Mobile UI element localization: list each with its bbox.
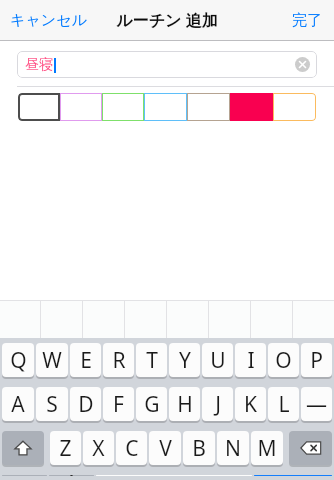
button[interactable] bbox=[41, 300, 82, 338]
button[interactable]: Colour 1 bbox=[18, 93, 60, 121]
button[interactable]: C bbox=[116, 431, 147, 469]
staticText: P bbox=[310, 346, 323, 375]
button[interactable]: V bbox=[149, 431, 181, 469]
button[interactable]: 昼寝 bbox=[17, 51, 317, 78]
button[interactable]: 完了 bbox=[254, 475, 332, 476]
button[interactable]: I bbox=[235, 343, 266, 381]
button[interactable] bbox=[167, 300, 208, 338]
button[interactable]: Colour 5 bbox=[187, 93, 230, 121]
button[interactable]: Z bbox=[50, 431, 81, 469]
staticText: K bbox=[244, 390, 257, 419]
button[interactable]: B bbox=[183, 431, 215, 469]
button[interactable]: G bbox=[136, 387, 167, 425]
button[interactable]: Colour 2 bbox=[60, 93, 102, 121]
button[interactable]: L bbox=[268, 387, 299, 425]
button[interactable]: D bbox=[70, 387, 101, 425]
button[interactable]: P bbox=[301, 343, 332, 381]
staticText: Q bbox=[10, 346, 27, 375]
button[interactable]: X bbox=[83, 431, 114, 469]
button[interactable]: R bbox=[103, 343, 134, 381]
staticText: W bbox=[42, 346, 62, 375]
staticText: L bbox=[278, 390, 290, 419]
button[interactable]: Colour 4 bbox=[144, 93, 187, 121]
staticText: H bbox=[177, 390, 193, 419]
button[interactable]: E bbox=[70, 343, 101, 381]
staticText: R bbox=[112, 346, 126, 375]
staticText: キャンセル bbox=[10, 11, 87, 30]
button[interactable]: Colour 3 bbox=[102, 93, 144, 121]
staticText: N bbox=[225, 434, 241, 463]
staticText: F bbox=[113, 390, 124, 419]
staticText: — bbox=[306, 390, 327, 419]
staticText: M bbox=[257, 434, 277, 463]
button[interactable]: A bbox=[2, 387, 34, 425]
button[interactable]: H bbox=[169, 387, 200, 425]
button[interactable]: T bbox=[136, 343, 167, 381]
staticText: I bbox=[247, 346, 255, 375]
button[interactable]: W bbox=[36, 343, 68, 381]
button[interactable] bbox=[293, 300, 334, 338]
button[interactable]: Shift bbox=[2, 431, 44, 469]
button[interactable]: J bbox=[202, 387, 233, 425]
staticText: Y bbox=[179, 346, 191, 375]
button[interactable]: M bbox=[251, 431, 283, 469]
button[interactable]: S bbox=[36, 387, 68, 425]
button[interactable]: — bbox=[301, 387, 332, 425]
button[interactable]: Switch keyboard bbox=[49, 475, 94, 476]
staticText: S bbox=[46, 390, 58, 419]
button[interactable] bbox=[125, 300, 166, 338]
staticText: G bbox=[144, 390, 160, 419]
button[interactable] bbox=[209, 300, 250, 338]
staticText: J bbox=[215, 390, 221, 419]
staticText: B bbox=[192, 434, 206, 463]
staticText: ルーチン 追加 bbox=[116, 9, 218, 31]
button[interactable]: F bbox=[103, 387, 134, 425]
staticText: E bbox=[80, 346, 92, 375]
button[interactable]: O bbox=[268, 343, 299, 381]
staticText: 昼寝 bbox=[25, 56, 53, 74]
staticText: A bbox=[11, 390, 25, 419]
staticText: V bbox=[159, 434, 172, 463]
button[interactable]: キャンセル bbox=[6, 7, 91, 34]
staticText: T bbox=[146, 346, 158, 375]
button[interactable]: Y bbox=[169, 343, 200, 381]
staticText: C bbox=[125, 434, 139, 463]
button[interactable] bbox=[251, 300, 292, 338]
staticText: Z bbox=[59, 434, 72, 463]
staticText: O bbox=[275, 346, 292, 375]
button[interactable]: Q bbox=[2, 343, 34, 381]
staticText: X bbox=[92, 434, 105, 463]
staticText: 完了 bbox=[292, 11, 322, 30]
staticText: U bbox=[210, 346, 226, 375]
button[interactable]: K bbox=[235, 387, 266, 425]
staticText: D bbox=[78, 390, 94, 419]
button[interactable]: N bbox=[217, 431, 249, 469]
button[interactable] bbox=[0, 300, 40, 338]
button[interactable]: 完了 bbox=[288, 7, 326, 34]
button[interactable] bbox=[83, 300, 124, 338]
button[interactable]: Backspace bbox=[289, 431, 332, 469]
button[interactable]: U bbox=[202, 343, 233, 381]
button[interactable]: Colour 7 bbox=[273, 93, 316, 121]
button[interactable]: Clear text bbox=[295, 57, 310, 72]
